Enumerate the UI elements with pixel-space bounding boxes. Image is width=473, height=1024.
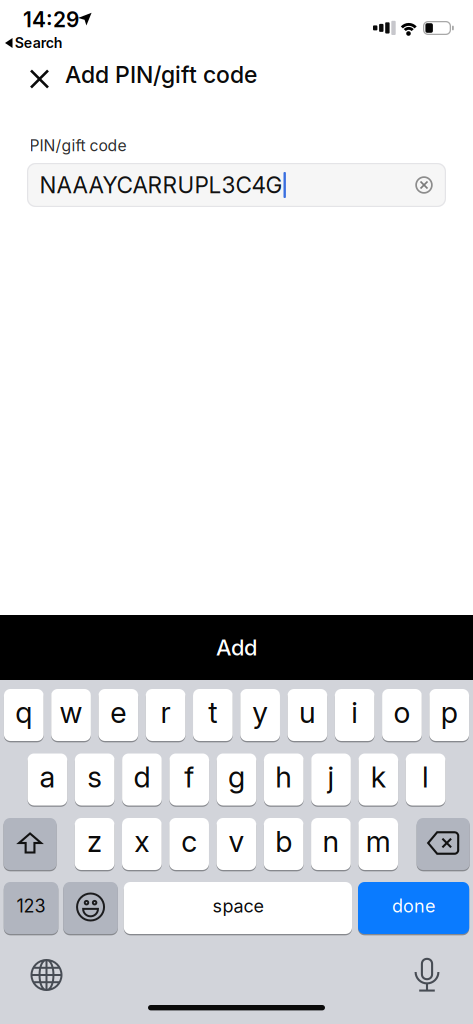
staticText: w bbox=[60, 695, 83, 730]
button[interactable]: h bbox=[264, 753, 304, 805]
button[interactable]: m bbox=[358, 818, 398, 870]
button[interactable]: g bbox=[217, 753, 256, 805]
staticText: v bbox=[228, 824, 244, 859]
staticText: 123 bbox=[17, 895, 46, 917]
staticText: o bbox=[393, 695, 410, 730]
staticText: PIN/gift code bbox=[29, 136, 126, 155]
staticText: g bbox=[228, 760, 245, 794]
staticText: Add bbox=[216, 634, 257, 660]
button[interactable]: a bbox=[28, 753, 67, 805]
button[interactable]: w bbox=[51, 689, 91, 741]
staticText: z bbox=[87, 824, 102, 859]
staticText: l bbox=[422, 760, 429, 794]
staticText: t bbox=[208, 695, 217, 730]
button[interactable]: z bbox=[75, 818, 114, 870]
staticText: s bbox=[87, 760, 102, 794]
button[interactable] bbox=[31, 960, 61, 990]
staticText: n bbox=[322, 824, 339, 859]
staticText: Search bbox=[15, 34, 63, 51]
button[interactable] bbox=[412, 958, 442, 993]
button[interactable]: s bbox=[75, 753, 114, 805]
button[interactable]: t bbox=[193, 689, 233, 741]
button[interactable]: r bbox=[146, 689, 185, 741]
button[interactable]: c bbox=[169, 818, 209, 870]
button[interactable]: k bbox=[358, 753, 398, 805]
staticText: b bbox=[275, 824, 292, 859]
button[interactable]: i bbox=[335, 689, 374, 741]
staticText: 14:29 bbox=[23, 7, 79, 32]
staticText: u bbox=[299, 695, 316, 730]
button[interactable]: n bbox=[311, 818, 351, 870]
staticText: c bbox=[181, 824, 197, 859]
staticText: i bbox=[351, 695, 358, 730]
staticText: NAAAYCARRUPL3C4G bbox=[39, 172, 282, 198]
button[interactable]: u bbox=[288, 689, 327, 741]
staticText: f bbox=[184, 760, 194, 794]
button[interactable]: 123 bbox=[4, 882, 58, 934]
button[interactable]: d bbox=[122, 753, 162, 805]
button[interactable] bbox=[23, 62, 56, 95]
button[interactable]: o bbox=[382, 689, 422, 741]
button[interactable]: x bbox=[122, 818, 162, 870]
staticText: m bbox=[366, 824, 391, 859]
button[interactable]: e bbox=[98, 689, 138, 741]
button[interactable] bbox=[63, 882, 118, 934]
staticText: Add PIN/gift code bbox=[65, 61, 257, 88]
staticText: x bbox=[134, 824, 149, 859]
staticText: r bbox=[161, 695, 171, 730]
staticText: space bbox=[212, 895, 263, 917]
staticText: h bbox=[275, 760, 292, 794]
staticText: a bbox=[39, 760, 55, 794]
staticText: j bbox=[327, 760, 334, 794]
button[interactable]: Add bbox=[0, 615, 473, 680]
button[interactable]: l bbox=[406, 753, 445, 805]
staticText: q bbox=[15, 695, 32, 730]
button[interactable]: space bbox=[124, 882, 352, 934]
staticText: done bbox=[392, 895, 435, 917]
button[interactable]: f bbox=[169, 753, 209, 805]
button[interactable]: y bbox=[240, 689, 280, 741]
staticText: d bbox=[133, 760, 150, 794]
staticText: e bbox=[110, 695, 126, 730]
staticText: k bbox=[371, 760, 386, 794]
staticText: y bbox=[252, 695, 268, 730]
button[interactable] bbox=[415, 176, 433, 194]
button[interactable]: p bbox=[429, 689, 469, 741]
staticText: p bbox=[441, 695, 458, 730]
button[interactable]: q bbox=[4, 689, 44, 741]
button[interactable]: b bbox=[264, 818, 303, 870]
button[interactable]: j bbox=[311, 753, 351, 805]
button[interactable]: v bbox=[216, 818, 256, 870]
button[interactable] bbox=[417, 818, 470, 870]
button[interactable]: done bbox=[358, 882, 469, 934]
button[interactable] bbox=[3, 818, 56, 870]
